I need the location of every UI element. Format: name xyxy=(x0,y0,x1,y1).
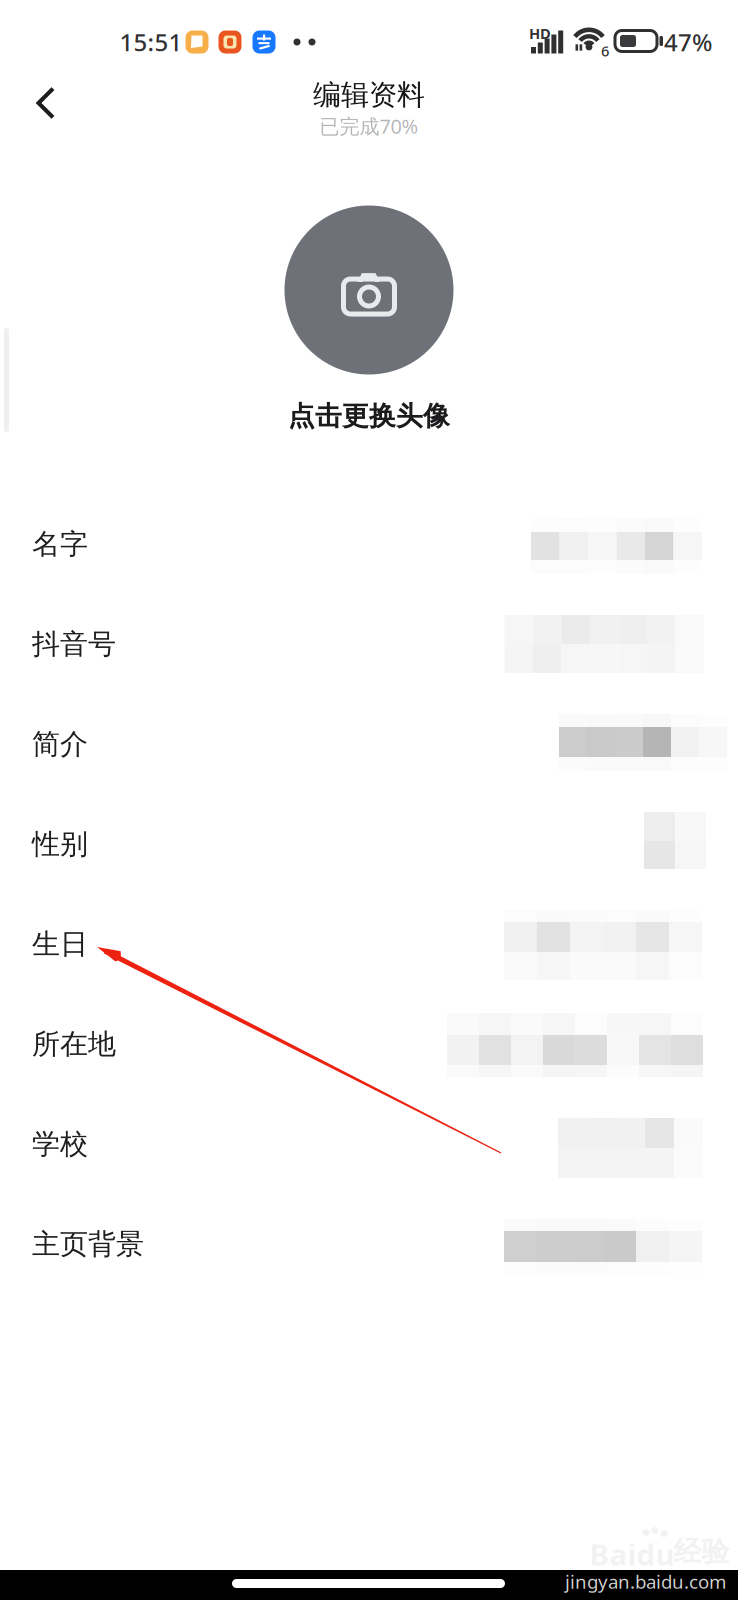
staticText: 点击更换头像 xyxy=(288,400,450,432)
staticText: 生日 xyxy=(32,927,88,961)
button[interactable]: 名字 xyxy=(0,493,738,593)
button[interactable]: 学校 xyxy=(0,1093,738,1193)
staticText: 编辑资料 xyxy=(313,78,425,112)
button[interactable]: 抖音号 xyxy=(0,593,738,693)
button[interactable]: 更换头像 xyxy=(284,205,453,374)
staticText: 抖音号 xyxy=(32,627,116,661)
staticText: 简介 xyxy=(32,727,88,761)
staticText: 所在地 xyxy=(32,1027,116,1061)
staticText: 6 xyxy=(601,41,609,60)
staticText: 学校 xyxy=(32,1127,88,1161)
staticText: 47% xyxy=(664,26,712,58)
button[interactable]: 返回 xyxy=(10,68,80,138)
button[interactable]: 生日 xyxy=(0,893,738,993)
staticText: HD xyxy=(529,23,551,43)
staticText: jingyan.baidu.com xyxy=(565,1569,726,1594)
button[interactable]: 性别 xyxy=(0,793,738,893)
staticText: 经验 xyxy=(673,1534,729,1569)
staticText: 已完成70% xyxy=(319,113,418,139)
staticText: 15:51 xyxy=(119,26,182,58)
button[interactable]: 简介 xyxy=(0,693,738,793)
button[interactable]: 点击更换头像 xyxy=(280,392,458,440)
staticText: 性别 xyxy=(32,827,88,861)
staticText: Baidu xyxy=(589,1534,674,1573)
button[interactable]: 所在地 xyxy=(0,993,738,1093)
button[interactable]: 主页背景 xyxy=(0,1193,738,1293)
staticText: 主页背景 xyxy=(32,1227,144,1261)
staticText: 名字 xyxy=(32,527,88,561)
